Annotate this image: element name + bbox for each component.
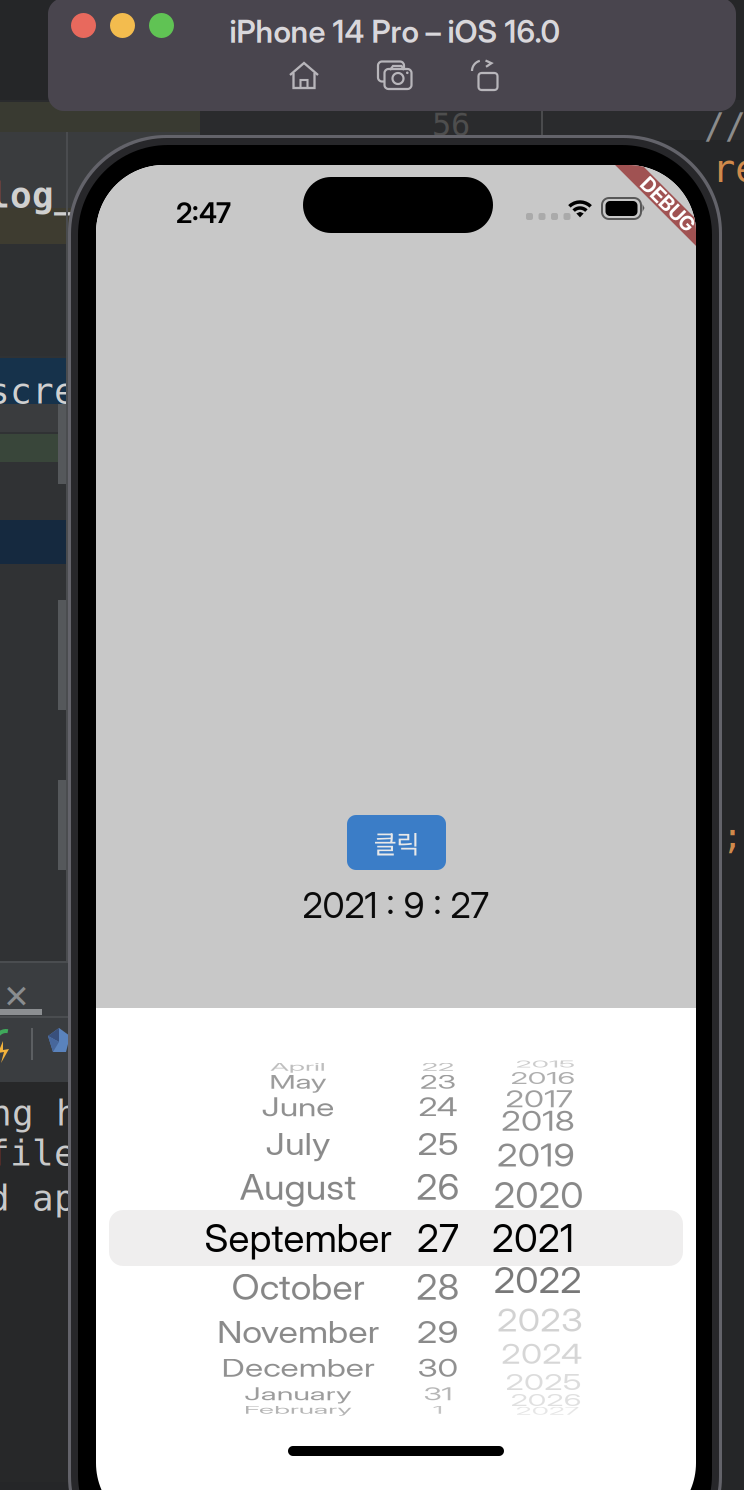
staticText: 2025 — [492, 1359, 582, 1405]
staticText: July — [263, 1121, 333, 1167]
staticText: 2022 — [492, 1257, 582, 1303]
button[interactable]: Screenshot — [376, 60, 414, 91]
staticText: September — [204, 1215, 391, 1261]
button[interactable]: Home — [287, 60, 320, 91]
staticText: files — [0, 1132, 98, 1174]
staticText: 2015 — [492, 1041, 574, 1087]
staticText: // — [704, 106, 744, 146]
staticText: 26 — [415, 1164, 460, 1210]
staticText: iPhone 14 Pro – iOS 16.0 — [229, 13, 560, 50]
staticText: 2020 — [492, 1172, 584, 1218]
staticText: 56 — [432, 106, 470, 143]
staticText: 29 — [415, 1309, 460, 1355]
staticText: October — [229, 1264, 366, 1310]
button[interactable]: Rotate — [470, 60, 500, 91]
staticText: 28 — [415, 1264, 460, 1310]
staticText: 2017 — [492, 1076, 572, 1122]
staticText: May — [262, 1059, 334, 1105]
staticText: ; — [722, 816, 743, 856]
staticText: 25 — [416, 1121, 460, 1167]
staticText: 2027 — [492, 1388, 580, 1434]
staticText: February — [223, 1387, 373, 1433]
button[interactable]: 클릭 — [347, 815, 446, 870]
staticText: ✕ — [3, 978, 30, 1015]
staticText: log_da — [0, 174, 120, 216]
staticText: 2:47 — [176, 196, 231, 230]
staticText: 31 — [419, 1371, 456, 1417]
staticText: January — [230, 1371, 366, 1417]
staticText: 2026 — [492, 1377, 583, 1423]
staticText: 24 — [415, 1084, 460, 1130]
staticText: ng ho — [0, 1092, 100, 1134]
staticText: 2021 — [492, 1215, 574, 1261]
staticText: 27 — [417, 1215, 459, 1261]
staticText: d app — [0, 1177, 98, 1219]
staticText: 1 — [431, 1387, 445, 1433]
staticText: 2023 — [492, 1297, 583, 1343]
staticText: scree — [0, 370, 98, 412]
staticText: December — [210, 1345, 386, 1391]
staticText: August — [238, 1164, 358, 1210]
staticText: 2021 : 9 : 27 — [302, 883, 489, 927]
staticText: 22 — [416, 1044, 460, 1090]
staticText: 2024 — [492, 1331, 583, 1377]
staticText: November — [211, 1309, 385, 1355]
staticText: 2018 — [492, 1098, 575, 1144]
staticText: 2019 — [492, 1132, 575, 1178]
staticText: April — [260, 1044, 335, 1090]
staticText: 30 — [414, 1345, 461, 1391]
staticText: 23 — [415, 1059, 460, 1105]
staticText: DEBUG — [634, 192, 702, 217]
staticText: 클릭 — [373, 824, 419, 861]
staticText: June — [256, 1084, 340, 1130]
staticText: 2016 — [492, 1055, 575, 1101]
staticText: ret — [712, 146, 744, 191]
